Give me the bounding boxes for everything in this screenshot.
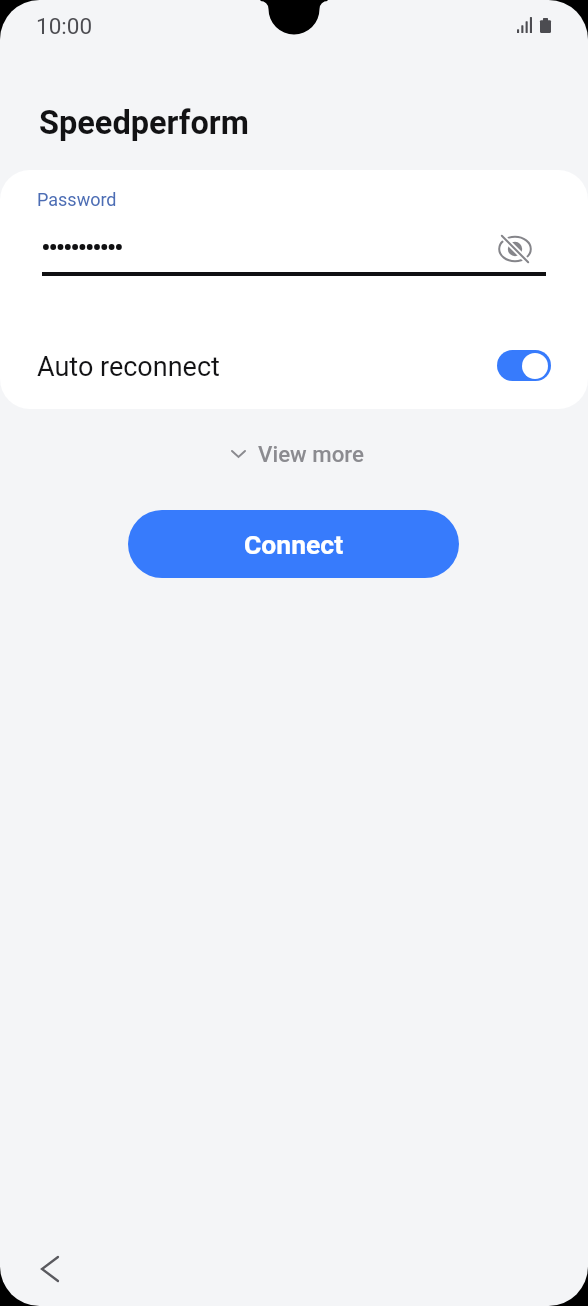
button[interactable]: Back xyxy=(22,1241,78,1297)
staticText: Auto reconnect xyxy=(37,351,497,383)
button[interactable]: View more xyxy=(222,440,372,472)
button[interactable]: Auto reconnect xyxy=(0,341,588,393)
staticText: Speedperform xyxy=(39,104,249,142)
button[interactable]: Show password xyxy=(489,223,541,275)
staticText: View more xyxy=(258,441,364,467)
staticText: Connect xyxy=(244,529,344,560)
staticText: 10:00 xyxy=(36,13,93,39)
button[interactable]: Auto reconnect xyxy=(497,350,551,381)
button[interactable]: Connect xyxy=(128,510,459,578)
staticText: Password xyxy=(37,189,117,210)
